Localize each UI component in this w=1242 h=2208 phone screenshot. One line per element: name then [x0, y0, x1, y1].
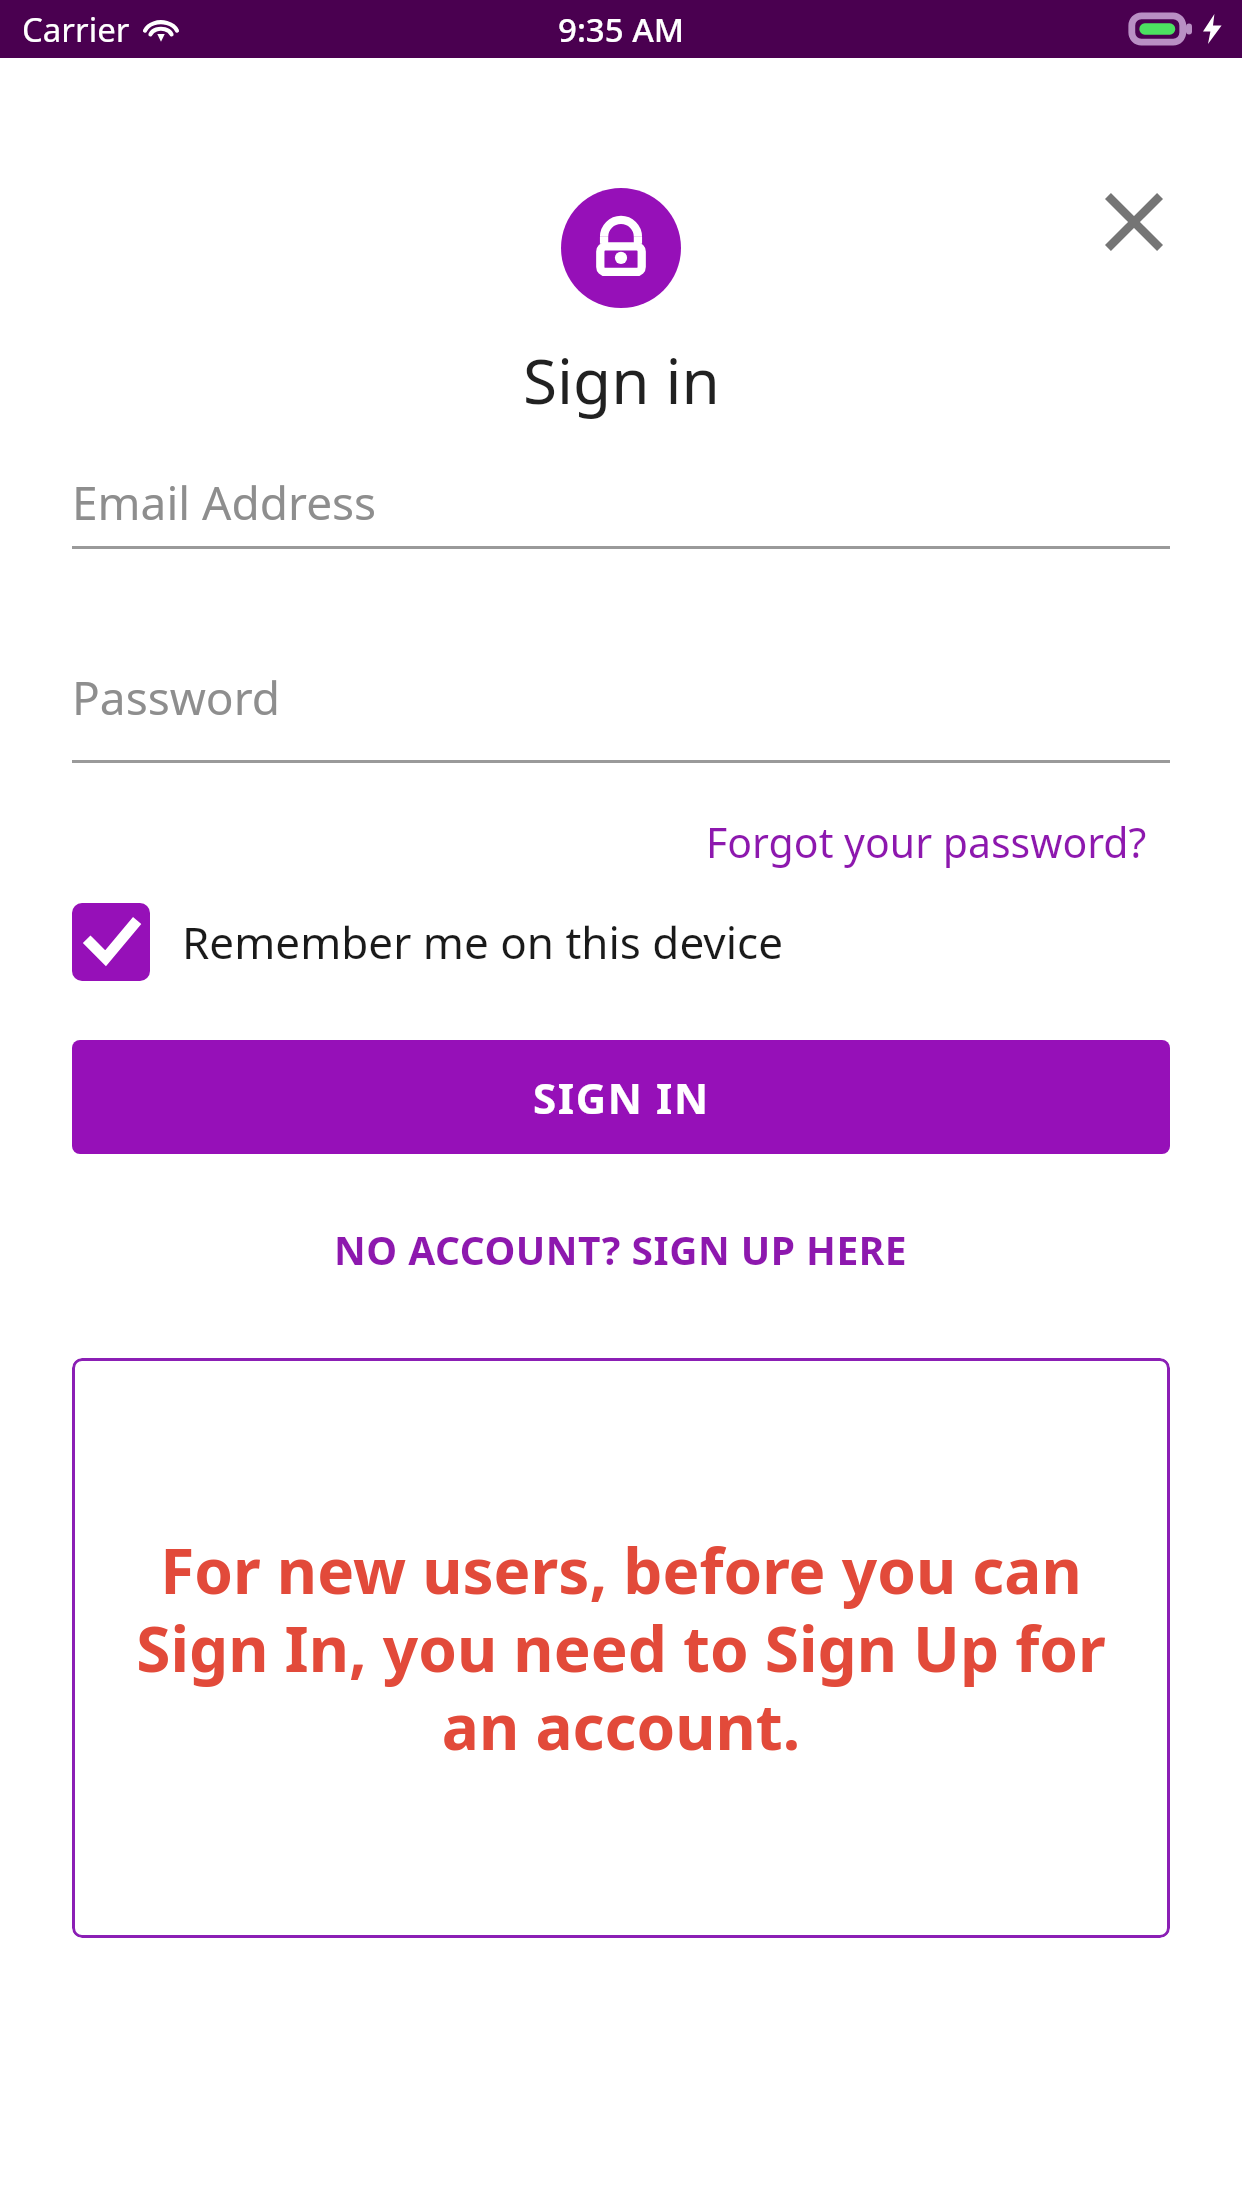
button[interactable]: Email Address — [72, 461, 1170, 567]
button[interactable]: Remember me on this device — [72, 903, 783, 981]
button[interactable]: Forgot your password? — [700, 810, 1153, 874]
staticText: Sign in — [523, 338, 720, 422]
button[interactable]: Password — [72, 656, 1170, 781]
staticText: Forgot your password? — [706, 814, 1147, 870]
button[interactable]: SIGN IN — [72, 1040, 1170, 1154]
staticText: Password — [72, 666, 281, 729]
staticText: Email Address — [72, 471, 377, 534]
staticText: 9:35 AM — [558, 7, 685, 52]
button[interactable]: NO ACCOUNT? SIGN UP HERE — [318, 1213, 924, 1286]
staticText: For new users, before you can Sign In, y… — [130, 1528, 1112, 1768]
button[interactable]: Close — [1078, 166, 1190, 278]
staticText: Carrier — [22, 7, 130, 52]
staticText: Remember me on this device — [182, 912, 783, 972]
staticText: NO ACCOUNT? SIGN UP HERE — [334, 1223, 908, 1276]
staticText: SIGN IN — [533, 1069, 710, 1126]
